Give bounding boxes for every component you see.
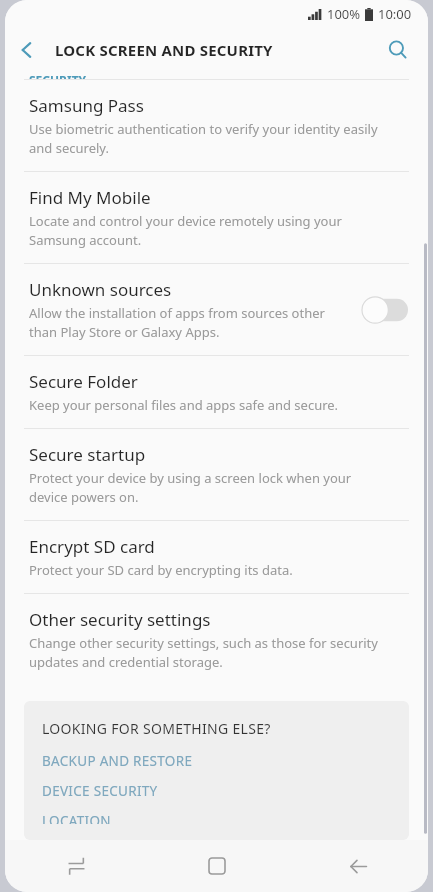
- staticText: BACKUP AND RESTORE: [42, 752, 193, 770]
- staticText: Locate and control your device remotely …: [29, 212, 390, 249]
- button[interactable]: Search: [376, 28, 420, 72]
- button[interactable]: Find My Mobile: [5, 172, 428, 263]
- staticText: LOCATION: [42, 812, 111, 824]
- staticText: Protect your device by using a screen lo…: [29, 469, 390, 506]
- button[interactable]: BACKUP AND RESTORE: [42, 752, 391, 770]
- staticText: Secure startup: [29, 443, 146, 466]
- button[interactable]: Samsung Pass: [5, 80, 428, 171]
- button[interactable]: Unknown sources toggle: [358, 296, 408, 324]
- button[interactable]: Back: [5, 28, 49, 72]
- button[interactable]: Secure Folder: [5, 356, 428, 428]
- staticText: Use biometric authentication to verify y…: [29, 120, 390, 157]
- button[interactable]: Unknown sources: [5, 264, 428, 355]
- staticText: Keep your personal files and apps safe a…: [29, 396, 339, 414]
- button[interactable]: Recents: [44, 840, 108, 892]
- button[interactable]: LOCATION: [42, 812, 391, 824]
- staticText: Allow the installation of apps from sour…: [29, 304, 334, 341]
- button[interactable]: DEVICE SECURITY: [42, 782, 391, 800]
- staticText: Change other security settings, such as …: [29, 634, 390, 671]
- staticText: 100%: [327, 5, 361, 23]
- staticText: LOCK SCREEN AND SECURITY: [55, 40, 273, 60]
- button[interactable]: Encrypt SD card: [5, 521, 428, 593]
- staticText: Find My Mobile: [29, 186, 151, 209]
- staticText: LOOKING FOR SOMETHING ELSE?: [42, 719, 271, 738]
- button[interactable]: Back: [326, 840, 390, 892]
- staticText: Protect your SD card by encrypting its d…: [29, 561, 293, 579]
- staticText: SECURITY: [29, 72, 87, 79]
- staticText: 10:00: [378, 5, 412, 23]
- staticText: Samsung Pass: [29, 94, 144, 117]
- staticText: Unknown sources: [29, 278, 172, 301]
- staticText: Encrypt SD card: [29, 535, 155, 558]
- button[interactable]: Other security settings: [5, 594, 428, 685]
- staticText: DEVICE SECURITY: [42, 782, 158, 800]
- button[interactable]: Secure startup: [5, 429, 428, 520]
- button[interactable]: SECURITY: [5, 72, 428, 79]
- button[interactable]: Home: [185, 840, 249, 892]
- staticText: Secure Folder: [29, 370, 138, 393]
- staticText: Other security settings: [29, 608, 211, 631]
